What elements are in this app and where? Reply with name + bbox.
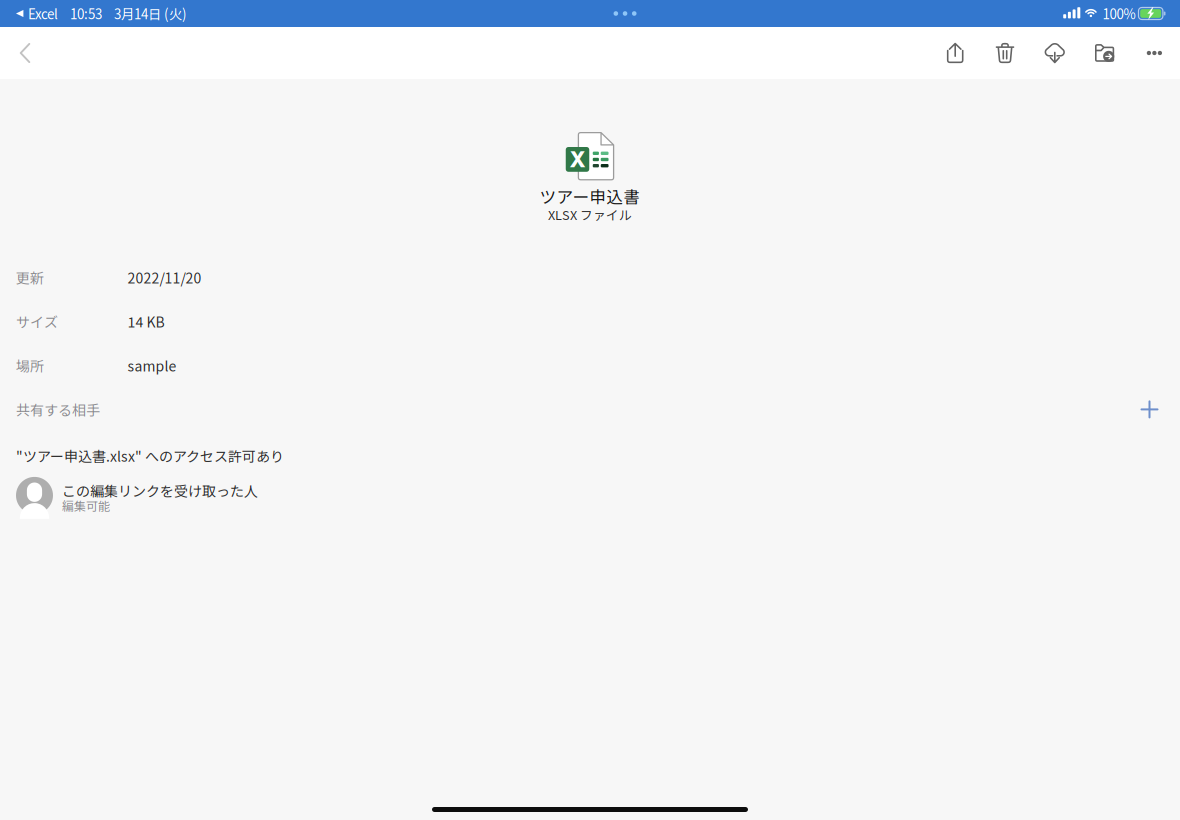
button[interactable]: Download bbox=[1030, 27, 1080, 79]
staticText: 3月14日 (火) bbox=[114, 4, 187, 23]
staticText: XLSX ファイル bbox=[548, 205, 632, 223]
staticText: 100% bbox=[1102, 4, 1135, 23]
staticText: sample bbox=[127, 355, 176, 376]
button[interactable]: この編集リンクを受け取った人 bbox=[16, 463, 1166, 515]
staticText: 編集可能 bbox=[62, 497, 110, 514]
staticText: 2022/11/20 bbox=[127, 267, 201, 288]
button[interactable]: More options bbox=[1129, 27, 1179, 79]
staticText: 共有する相手 bbox=[16, 399, 100, 420]
staticText: この編集リンクを受け取った人 bbox=[62, 480, 258, 501]
staticText: 場所 bbox=[16, 355, 44, 376]
staticText: "ツアー申込書.xlsx" へのアクセス許可あり bbox=[16, 445, 284, 463]
staticText: Excel bbox=[28, 4, 58, 23]
button[interactable]: Delete bbox=[980, 27, 1030, 79]
staticText: 10:53 bbox=[70, 4, 102, 23]
staticText: 更新 bbox=[16, 267, 44, 288]
staticText: ツアー申込書 bbox=[539, 184, 640, 208]
button[interactable]: Share bbox=[930, 27, 980, 79]
button[interactable]: Back bbox=[0, 27, 50, 79]
button[interactable]: Add people bbox=[1133, 393, 1166, 426]
staticText: X bbox=[569, 146, 585, 172]
staticText: 14 KB bbox=[127, 311, 164, 332]
button[interactable]: Move to folder bbox=[1080, 27, 1129, 79]
staticText: サイズ bbox=[16, 311, 58, 332]
